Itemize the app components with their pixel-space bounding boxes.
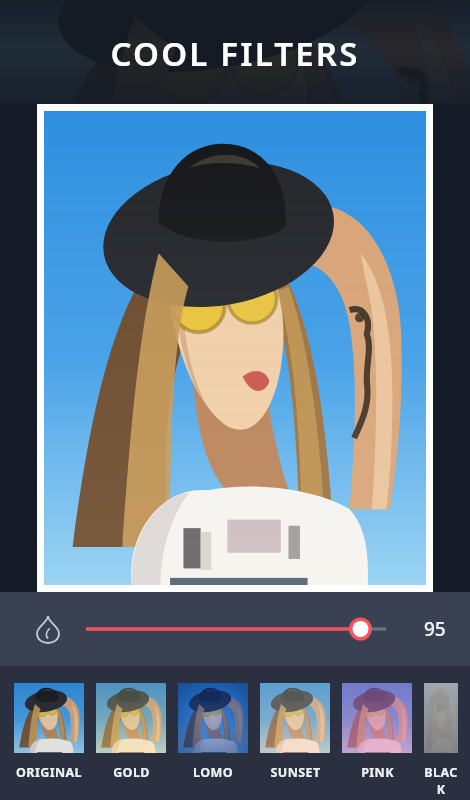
button[interactable] — [44, 111, 426, 585]
staticText: PINK — [361, 764, 394, 781]
button[interactable]: PINK — [342, 683, 412, 781]
staticText: 95 — [424, 616, 446, 642]
button[interactable] — [80, 612, 392, 646]
button[interactable]: GOLD — [96, 683, 166, 781]
staticText: GOLD — [113, 764, 150, 781]
button[interactable]: SUNSET — [260, 683, 330, 781]
staticText: BLACK — [424, 764, 458, 798]
button[interactable]: ORIGINAL — [14, 683, 84, 781]
button[interactable]: Adjust intensity — [28, 609, 68, 649]
button[interactable]: LOMO — [178, 683, 248, 781]
staticText: LOMO — [193, 764, 233, 781]
button[interactable]: BLACK — [424, 683, 458, 798]
staticText: SUNSET — [270, 764, 321, 781]
staticText: COOL FILTERS — [110, 31, 360, 76]
staticText: ORIGINAL — [16, 764, 82, 781]
